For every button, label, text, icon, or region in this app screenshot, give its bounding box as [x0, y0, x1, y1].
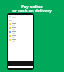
button[interactable]	[8, 22, 33, 26]
button[interactable]	[8, 38, 33, 42]
button[interactable]	[8, 26, 33, 30]
button[interactable]	[8, 34, 33, 38]
button[interactable]: Account	[8, 16, 33, 18]
button[interactable]	[8, 30, 33, 34]
staticText: Pay online or cash on delivery	[0, 4, 64, 14]
